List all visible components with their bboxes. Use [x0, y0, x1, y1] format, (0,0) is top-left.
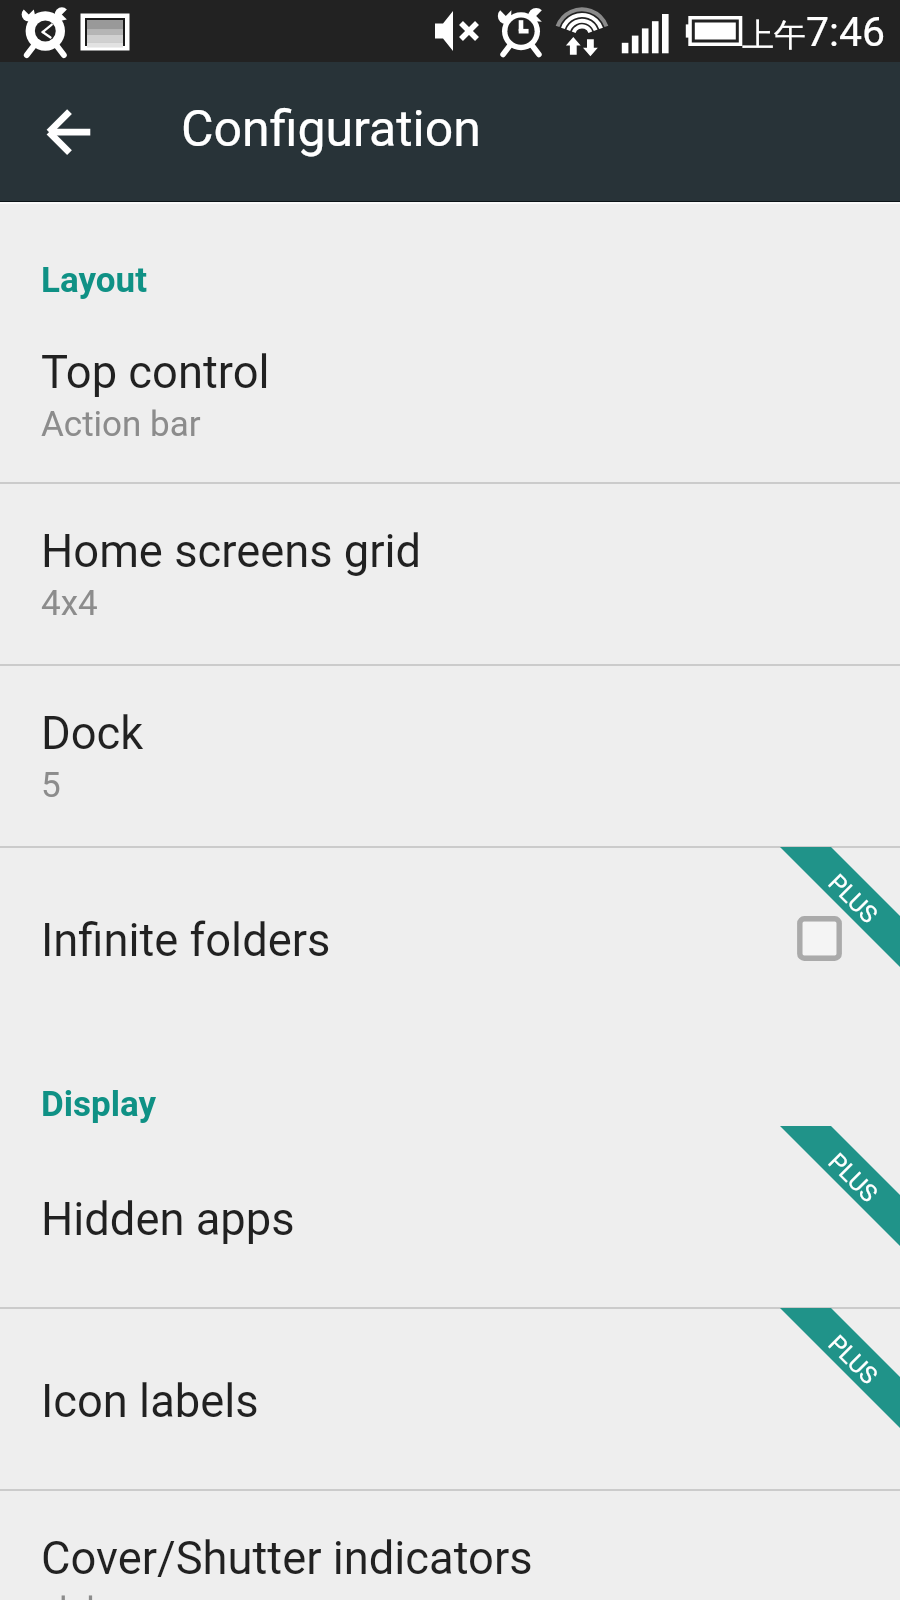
button[interactable]: Home screens grid	[0, 483, 900, 665]
staticText: PLUS	[823, 1148, 883, 1208]
button[interactable]: Top control	[0, 304, 900, 483]
staticText: Icon labels	[41, 1375, 259, 1428]
button[interactable]: Infinite folders	[0, 847, 900, 1029]
button[interactable]: Cover/Shutter indicators	[0, 1490, 900, 1600]
staticText: 7:46	[806, 8, 886, 56]
staticText: Display	[41, 1084, 157, 1125]
staticText: 上午	[742, 15, 806, 55]
button[interactable]: Back	[30, 89, 110, 169]
staticText: slab	[41, 1590, 107, 1600]
staticText: Dock	[41, 707, 144, 760]
staticText: Layout	[41, 260, 148, 301]
staticText: Hidden apps	[41, 1193, 295, 1246]
staticText: Action bar	[41, 404, 201, 445]
staticText: Top control	[41, 346, 270, 399]
staticText: PLUS	[823, 869, 883, 929]
staticText: Infinite folders	[41, 914, 331, 967]
staticText: Home screens grid	[41, 525, 422, 578]
staticText: 5	[41, 765, 61, 806]
staticText: Configuration	[181, 100, 481, 159]
button[interactable]: Hidden apps	[0, 1126, 900, 1308]
button[interactable]: Icon labels	[0, 1308, 900, 1490]
staticText: 4x4	[41, 583, 98, 624]
staticText: Cover/Shutter indicators	[41, 1532, 533, 1585]
staticText: PLUS	[823, 1330, 883, 1390]
button[interactable]: Dock	[0, 665, 900, 847]
